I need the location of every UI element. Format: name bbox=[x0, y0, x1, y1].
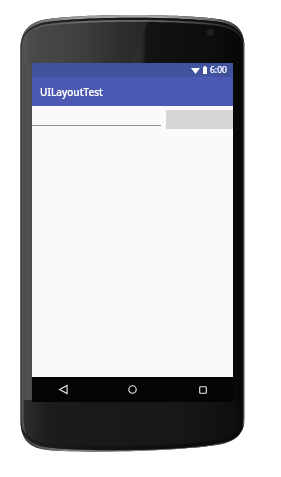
button[interactable]: Back bbox=[43, 377, 83, 402]
button[interactable]: Text field bbox=[32, 106, 161, 126]
button[interactable]: Home bbox=[112, 377, 152, 402]
staticText: UILayoutTest bbox=[40, 85, 103, 99]
button[interactable]: Recent apps bbox=[183, 377, 223, 402]
staticText: 6:00 bbox=[210, 64, 227, 76]
